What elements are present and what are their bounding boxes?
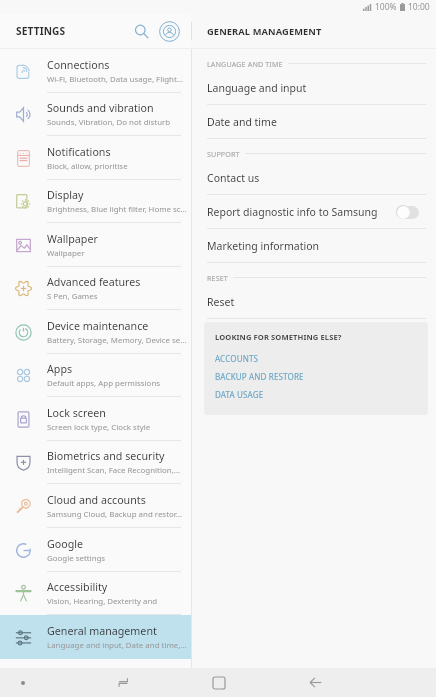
button[interactable]: Back bbox=[267, 668, 363, 697]
staticText: Contact us bbox=[207, 171, 260, 185]
button[interactable]: DATA USAGE bbox=[215, 385, 428, 403]
staticText: Language and input, Date and time,… bbox=[47, 640, 187, 651]
button[interactable]: Cloud and accounts bbox=[0, 484, 191, 528]
button[interactable]: Search bbox=[128, 18, 154, 44]
button[interactable]: Display bbox=[0, 180, 191, 223]
button[interactable]: Sounds and vibration bbox=[0, 93, 191, 136]
button[interactable]: Date and time bbox=[192, 105, 436, 139]
button[interactable]: General management bbox=[0, 615, 191, 659]
staticText: Wi-Fi, Bluetooth, Data usage, Flight… bbox=[47, 74, 184, 85]
staticText: GENERAL MANAGEMENT bbox=[207, 25, 322, 38]
staticText: BACKUP AND RESTORE bbox=[215, 371, 304, 382]
staticText: Apps bbox=[47, 362, 73, 377]
button[interactable]: Device maintenance bbox=[0, 310, 191, 354]
staticText: Connections bbox=[47, 58, 110, 73]
staticText: LANGUAGE AND TIME bbox=[207, 59, 283, 69]
staticText: S Pen, Games bbox=[47, 291, 98, 302]
staticText: Language and input bbox=[207, 81, 307, 95]
staticText: Reset bbox=[207, 295, 235, 309]
staticText: Sounds and vibration bbox=[47, 101, 154, 116]
staticText: Cloud and accounts bbox=[47, 493, 146, 508]
staticText: Sounds, Vibration, Do not disturb bbox=[47, 117, 171, 128]
button[interactable]: Biometrics and security bbox=[0, 441, 191, 484]
button[interactable]: Account bbox=[156, 18, 182, 44]
staticText: Brightness, Blue light filter, Home sc… bbox=[47, 204, 187, 215]
staticText: Battery, Storage, Memory, Device se… bbox=[47, 335, 187, 346]
staticText: Samsung Cloud, Backup and restor… bbox=[47, 509, 183, 520]
button[interactable]: Recents bbox=[75, 668, 171, 697]
staticText: ACCOUNTS bbox=[215, 353, 259, 364]
staticText: LOOKING FOR SOMETHING ELSE? bbox=[215, 332, 342, 342]
staticText: Wallpaper bbox=[47, 232, 98, 247]
staticText: DATA USAGE bbox=[215, 389, 264, 400]
staticText: Lock screen bbox=[47, 406, 106, 421]
staticText: 10:00 bbox=[408, 1, 430, 13]
button[interactable]: Reset bbox=[192, 285, 436, 319]
button[interactable]: Apps bbox=[0, 354, 191, 397]
staticText: Report diagnostic info to Samsung bbox=[207, 205, 378, 219]
staticText: Screen lock type, Clock style bbox=[47, 422, 151, 433]
staticText: Marketing information bbox=[207, 239, 320, 253]
button[interactable]: Language and input bbox=[192, 71, 436, 105]
button[interactable]: Lock screen bbox=[0, 397, 191, 441]
button[interactable]: Connections bbox=[0, 49, 191, 93]
staticText: Google settings bbox=[47, 553, 106, 564]
staticText: Wallpaper bbox=[47, 248, 85, 259]
staticText: Default apps, App permissions bbox=[47, 378, 161, 389]
button[interactable]: ACCOUNTS bbox=[215, 349, 428, 367]
button[interactable]: Marketing information bbox=[192, 229, 436, 263]
button[interactable]: Accessibility bbox=[0, 572, 191, 615]
button[interactable]: Report diagnostic info to Samsung bbox=[192, 195, 436, 229]
staticText: 100% bbox=[375, 1, 397, 13]
staticText: Intelligent Scan, Face Recognition,… bbox=[47, 465, 181, 476]
button[interactable]: Contact us bbox=[192, 161, 436, 195]
staticText: Accessibility bbox=[47, 580, 108, 595]
staticText: Biometrics and security bbox=[47, 449, 165, 464]
button[interactable]: Notifications bbox=[0, 136, 191, 180]
staticText: SETTINGS bbox=[16, 24, 66, 38]
staticText: Vision, Hearing, Dexterity and intera… bbox=[47, 596, 187, 607]
staticText: RESET bbox=[207, 273, 228, 283]
staticText: Advanced features bbox=[47, 275, 141, 290]
staticText: General management bbox=[47, 624, 157, 639]
staticText: Display bbox=[47, 188, 84, 203]
button[interactable]: Wallpaper bbox=[0, 223, 191, 267]
staticText: SUPPORT bbox=[207, 149, 240, 159]
button[interactable]: Advanced features bbox=[0, 267, 191, 310]
staticText: Notifications bbox=[47, 145, 111, 160]
button[interactable]: BACKUP AND RESTORE bbox=[215, 367, 428, 385]
staticText: Google bbox=[47, 537, 84, 552]
button[interactable]: Google bbox=[0, 528, 191, 572]
button[interactable]: Home bbox=[171, 668, 267, 697]
staticText: Device maintenance bbox=[47, 319, 149, 334]
staticText: Date and time bbox=[207, 115, 277, 129]
staticText: Block, allow, prioritise bbox=[47, 161, 128, 172]
button[interactable]: Show keyboard bbox=[0, 668, 46, 697]
